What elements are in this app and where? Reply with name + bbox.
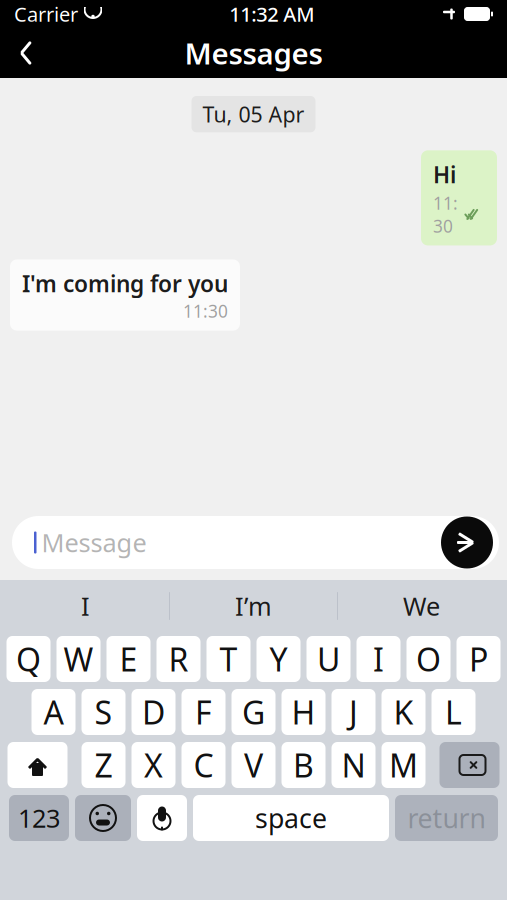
staticText: A: [43, 691, 63, 733]
staticText: Hi: [433, 159, 456, 189]
button[interactable]: K: [381, 689, 425, 735]
staticText: Q: [16, 638, 41, 680]
button[interactable]: U: [306, 636, 350, 682]
staticText: P: [469, 638, 488, 680]
button[interactable]: Y: [256, 636, 300, 682]
staticText: H: [291, 691, 315, 733]
button[interactable]: I’m: [170, 580, 337, 632]
staticText: Y: [269, 638, 287, 680]
staticText: Message: [41, 526, 146, 559]
staticText: T: [219, 638, 237, 680]
button[interactable]: I: [356, 636, 400, 682]
staticText: S: [94, 691, 112, 733]
button[interactable]: C: [181, 742, 225, 788]
button[interactable]: Send: [441, 516, 493, 568]
staticText: U: [317, 638, 340, 680]
button[interactable]: T: [206, 636, 250, 682]
button[interactable]: return: [395, 795, 498, 841]
staticText: I: [373, 638, 384, 680]
staticText: We: [403, 589, 440, 623]
button[interactable]: N: [331, 742, 375, 788]
button[interactable]: L: [431, 689, 475, 735]
staticText: Z: [94, 744, 112, 786]
staticText: X: [144, 744, 163, 786]
button[interactable]: B: [281, 742, 325, 788]
button[interactable]: 123: [9, 795, 69, 841]
staticText: D: [142, 691, 165, 733]
staticText: Carrier: [14, 1, 78, 27]
staticText: Tu, 05 Apr: [202, 100, 304, 128]
button[interactable]: P: [456, 636, 500, 682]
button[interactable]: We: [338, 580, 505, 632]
button[interactable]: H: [281, 689, 325, 735]
button[interactable]: Emoji: [75, 795, 131, 841]
button[interactable]: E: [106, 636, 150, 682]
staticText: J: [349, 691, 358, 733]
staticText: W: [63, 638, 93, 680]
staticText: space: [255, 800, 327, 836]
staticText: 11:32 AM: [229, 1, 314, 27]
button[interactable]: R: [156, 636, 200, 682]
staticText: L: [445, 691, 462, 733]
button[interactable]: M: [381, 742, 425, 788]
button[interactable]: S: [81, 689, 125, 735]
staticText: F: [195, 691, 212, 733]
button[interactable]: Back: [0, 28, 52, 78]
staticText: Messages: [184, 33, 322, 72]
button[interactable]: I: [2, 580, 169, 632]
button[interactable]: Z: [81, 742, 125, 788]
staticText: R: [168, 638, 188, 680]
button[interactable]: D: [131, 689, 175, 735]
button[interactable]: W: [56, 636, 100, 682]
staticText: B: [293, 744, 314, 786]
staticText: N: [341, 744, 365, 786]
button[interactable]: O: [406, 636, 450, 682]
staticText: G: [242, 691, 265, 733]
button[interactable]: F: [181, 689, 225, 735]
staticText: V: [244, 744, 263, 786]
staticText: I'm coming for you: [22, 268, 228, 299]
staticText: 123: [18, 801, 60, 835]
button[interactable]: Delete: [439, 742, 499, 788]
staticText: C: [193, 744, 213, 786]
staticText: 11:30: [433, 191, 458, 237]
button[interactable]: V: [231, 742, 275, 788]
staticText: E: [119, 638, 137, 680]
button[interactable]: Shift: [7, 742, 67, 788]
staticText: return: [407, 800, 485, 836]
staticText: M: [389, 744, 418, 786]
button[interactable]: space: [193, 795, 389, 841]
staticText: 11:30: [183, 300, 228, 323]
button[interactable]: Dictation: [137, 795, 187, 841]
button[interactable]: J: [331, 689, 375, 735]
staticText: O: [416, 638, 441, 680]
staticText: I: [81, 589, 90, 623]
button[interactable]: Q: [6, 636, 50, 682]
button[interactable]: G: [231, 689, 275, 735]
staticText: I’m: [235, 589, 272, 623]
staticText: K: [393, 691, 413, 733]
button[interactable]: Message: [12, 516, 499, 569]
button[interactable]: X: [131, 742, 175, 788]
button[interactable]: A: [31, 689, 75, 735]
